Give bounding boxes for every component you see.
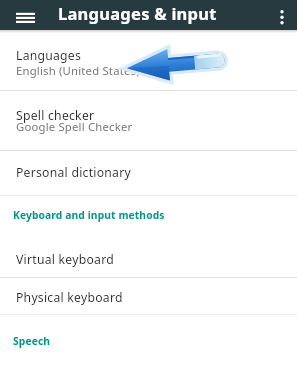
staticText: Keyboard and input methods <box>13 208 165 222</box>
staticText: Speech <box>13 334 51 348</box>
staticText: Personal dictionary <box>16 164 131 181</box>
staticText: Languages & input <box>58 2 217 24</box>
button[interactable]: Virtual keyboard <box>0 239 297 277</box>
button[interactable]: Spell checker <box>0 91 297 150</box>
staticText: Google Spell Checker <box>16 119 133 134</box>
staticText: Physical keyboard <box>16 289 123 306</box>
staticText: English (United States) <box>16 63 140 78</box>
button[interactable] <box>265 0 297 30</box>
staticText: Languages <box>16 47 82 64</box>
staticText: Spell checker <box>16 107 95 124</box>
button[interactable]: Languages <box>0 30 297 89</box>
button[interactable]: Physical keyboard <box>0 278 297 313</box>
staticText: Virtual keyboard <box>16 251 114 268</box>
button[interactable]: Personal dictionary <box>0 151 297 194</box>
button[interactable] <box>8 0 43 30</box>
